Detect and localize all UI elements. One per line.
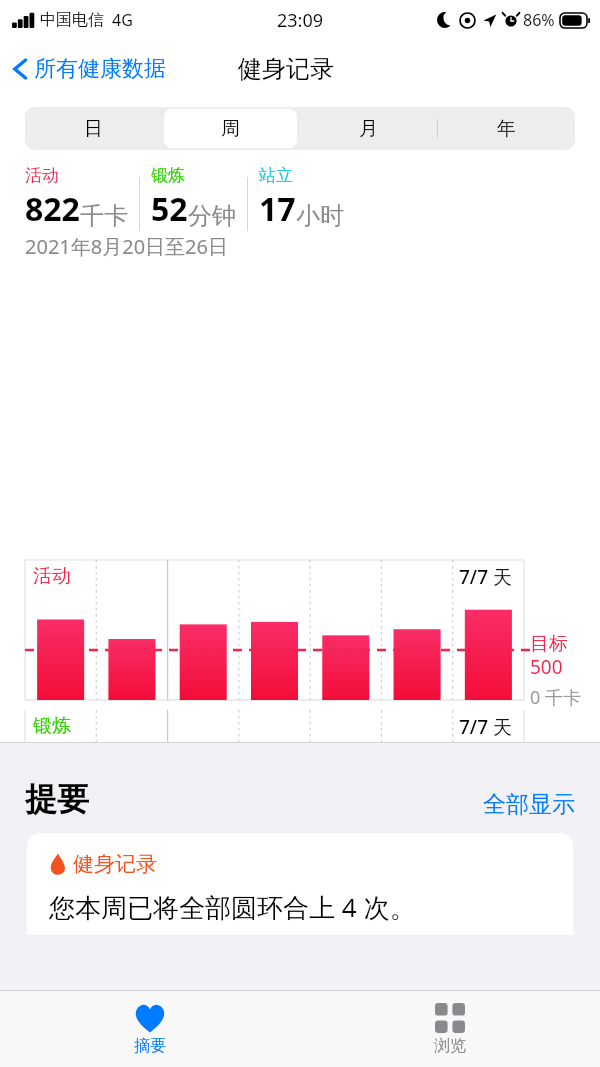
staticText: 中国电信 [40, 10, 104, 30]
staticText: 活动 [33, 564, 71, 588]
staticText: 周 [221, 117, 240, 141]
staticText: 千卡 [80, 201, 128, 231]
button[interactable]: 健身记录 [27, 833, 573, 935]
staticText: 周六 [103, 1002, 141, 1026]
staticText: 锻炼 [33, 714, 71, 738]
staticText: 4G [112, 9, 133, 31]
staticText: 86% [523, 9, 555, 31]
staticText: 健身记录 [238, 54, 334, 84]
staticText: 活动 [25, 165, 59, 186]
staticText: 822 [25, 187, 80, 231]
staticText: 23:09 [277, 8, 324, 33]
staticText: 您本周已将全部圆环合上 4 次。 [49, 889, 416, 925]
staticText: 年 [497, 117, 516, 141]
staticText: 7/7 天 [459, 564, 512, 590]
staticText: 30 [530, 804, 552, 830]
staticText: 2021年8月20日至26日 [25, 233, 228, 260]
staticText: 健身记录 [73, 851, 157, 877]
staticText: 日 [84, 117, 103, 141]
staticText: 52 [151, 187, 188, 231]
button[interactable]: 所有健康数据 [10, 55, 166, 83]
button[interactable]: 日 [27, 109, 160, 148]
staticText: 0 千卡 [530, 685, 581, 710]
button[interactable]: 浏览 [300, 991, 600, 1067]
staticText: 7/7 天 [459, 714, 512, 740]
staticText: 17 [259, 187, 296, 231]
staticText: 所有健康数据 [34, 55, 166, 83]
staticText: 全部显示 [483, 790, 575, 819]
staticText: 小时 [296, 201, 344, 231]
staticText: 月 [359, 117, 378, 141]
staticText: 站立 [33, 864, 71, 888]
staticText: 站立 [259, 165, 293, 186]
staticText: 摘要 [134, 1036, 166, 1056]
staticText: 浏览 [434, 1036, 466, 1056]
staticText: 周四 [459, 1002, 497, 1026]
staticText: 500 [530, 654, 563, 680]
button[interactable]: 周 [164, 109, 297, 148]
staticText: 锻炼 [151, 165, 185, 186]
staticText: 分钟 [188, 201, 236, 231]
staticText: 目标 [530, 632, 568, 656]
button[interactable]: 月 [301, 109, 435, 148]
staticText: 0 小时 [530, 985, 581, 1010]
staticText: 提要 [25, 779, 89, 819]
button[interactable]: 摘要 [0, 991, 300, 1067]
button[interactable]: 全部显示 [483, 790, 575, 819]
button[interactable]: 年 [439, 109, 573, 148]
staticText: 目标 [530, 782, 568, 806]
